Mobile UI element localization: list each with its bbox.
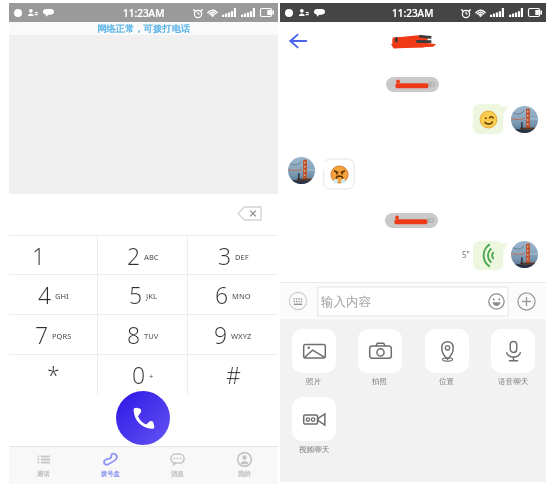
button[interactable]: 6: [188, 275, 278, 314]
button[interactable]: 照片: [292, 329, 336, 387]
staticText: 1: [32, 240, 46, 271]
button[interactable]: 0: [98, 355, 188, 394]
staticText: 视频聊天: [299, 445, 330, 455]
staticText: 4: [38, 279, 52, 310]
staticText: JKL: [146, 291, 157, 301]
staticText: 8: [127, 319, 141, 350]
staticText: 9: [214, 319, 228, 350]
staticText: 通话: [37, 470, 50, 478]
button[interactable]: Backspace: [234, 204, 264, 222]
button[interactable]: Call: [116, 391, 170, 445]
button[interactable]: [473, 241, 509, 270]
button[interactable]: #: [188, 355, 278, 394]
staticText: #: [226, 359, 241, 390]
staticText: 输入内容: [321, 294, 371, 310]
button[interactable]: 2: [98, 236, 188, 274]
staticText: 拍照: [372, 377, 388, 387]
button[interactable]: 7: [9, 315, 98, 354]
button[interactable]: 4: [9, 275, 98, 314]
staticText: 5: [129, 279, 143, 310]
staticText: 0: [132, 359, 146, 390]
staticText: MNO: [232, 291, 251, 301]
button[interactable]: 3: [188, 236, 278, 274]
button[interactable]: 视频聊天: [292, 397, 336, 455]
staticText: +: [149, 371, 154, 381]
staticText: 7: [35, 319, 49, 350]
staticText: DEF: [235, 252, 249, 262]
button[interactable]: Back: [285, 28, 311, 54]
staticText: GHI: [55, 291, 69, 301]
button[interactable]: 输入内容: [318, 287, 508, 316]
staticText: 11:23AM: [123, 6, 165, 20]
staticText: TUV: [144, 331, 159, 341]
button[interactable]: 我的: [211, 446, 278, 484]
staticText: 3: [218, 240, 232, 271]
staticText: 我的: [238, 470, 251, 478]
button[interactable]: 1: [9, 236, 98, 274]
staticText: 5": [462, 249, 470, 260]
button[interactable]: 通话: [9, 446, 77, 484]
staticText: 照片: [306, 377, 322, 387]
button[interactable]: 消息: [144, 446, 211, 484]
button[interactable]: *: [9, 355, 98, 394]
button[interactable]: 拨号盘: [77, 446, 144, 484]
staticText: 消息: [171, 470, 184, 478]
button[interactable]: 语音聊天: [491, 329, 535, 387]
staticText: 2: [127, 240, 141, 271]
staticText: 网络正常，可拨打电话: [97, 23, 190, 35]
button[interactable]: Keyboard: [289, 292, 307, 310]
staticText: 拨号盘: [101, 470, 120, 478]
staticText: PQRS: [52, 331, 72, 341]
button[interactable]: 位置: [425, 329, 469, 387]
button[interactable]: [473, 104, 509, 134]
staticText: 6: [215, 279, 229, 310]
staticText: 11:23AM: [392, 6, 434, 20]
staticText: WXYZ: [231, 331, 252, 341]
staticText: *: [47, 359, 60, 390]
button[interactable]: More: [517, 292, 536, 311]
button[interactable]: 拍照: [358, 329, 402, 387]
button[interactable]: 8: [98, 315, 188, 354]
button[interactable]: Emoji: [488, 293, 505, 310]
button[interactable]: 5: [98, 275, 188, 314]
staticText: 位置: [439, 377, 455, 387]
staticText: ABC: [144, 252, 159, 262]
button[interactable]: 9: [188, 315, 278, 354]
button[interactable]: [318, 159, 354, 189]
staticText: 语音聊天: [498, 377, 529, 387]
